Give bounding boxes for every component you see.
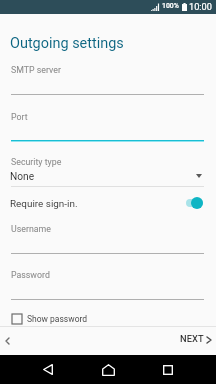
button[interactable]: Recent apps (150, 355, 186, 384)
button[interactable]: Home (90, 355, 126, 384)
staticText: SMTP server (11, 65, 61, 75)
button[interactable] (0, 192, 216, 214)
button[interactable]: Previous (0, 330, 20, 350)
staticText: Require sign-in. (10, 198, 78, 210)
button[interactable] (0, 58, 216, 96)
button[interactable] (0, 151, 216, 188)
staticText: None (10, 171, 35, 183)
staticText: Port (11, 112, 28, 122)
button[interactable]: NEXT (174, 330, 214, 350)
staticText: Show password (27, 314, 88, 324)
button[interactable]: Back (30, 355, 66, 384)
staticText: NEXT (180, 333, 204, 344)
staticText: Security type (11, 157, 62, 167)
button[interactable] (0, 263, 216, 301)
button[interactable] (0, 105, 216, 143)
button[interactable] (0, 217, 216, 255)
staticText: Outgoing settings (10, 35, 124, 52)
button[interactable] (0, 307, 216, 327)
staticText: 10:00 (189, 1, 212, 12)
staticText: 100% (162, 2, 179, 10)
staticText: Password (11, 270, 50, 280)
staticText: Username (11, 224, 51, 234)
